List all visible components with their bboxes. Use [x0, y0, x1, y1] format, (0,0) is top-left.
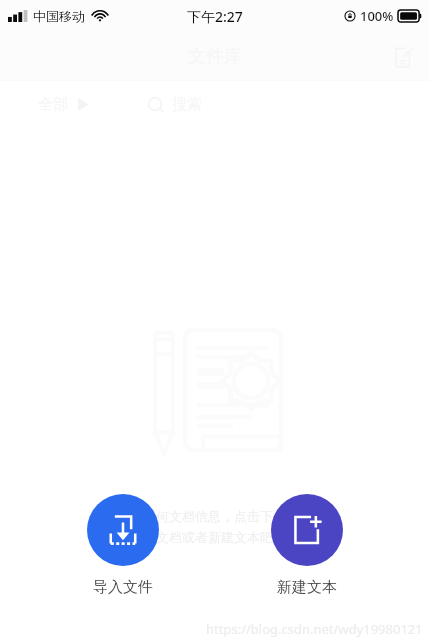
staticText: 全部: [38, 95, 68, 114]
staticText: 您还没有任何文档信息，点击下方按钮导入: [91, 508, 338, 524]
button[interactable]: 搜索: [148, 95, 202, 114]
staticText: https://blog.csdn.net/wdy19980121: [206, 620, 423, 638]
staticText: 新建文本: [277, 578, 337, 597]
button[interactable]: 导入文件: [87, 494, 159, 597]
staticText: 下午2:27: [187, 7, 243, 26]
staticText: 搜索: [172, 95, 202, 114]
staticText: 中国移动: [33, 8, 85, 24]
button[interactable]: 新建文本: [271, 494, 343, 597]
button[interactable]: 全部: [38, 95, 89, 114]
staticText: 100%: [360, 7, 394, 25]
staticText: 导入文件: [93, 578, 153, 597]
staticText: 文档或者新建文本吧: [156, 529, 273, 545]
